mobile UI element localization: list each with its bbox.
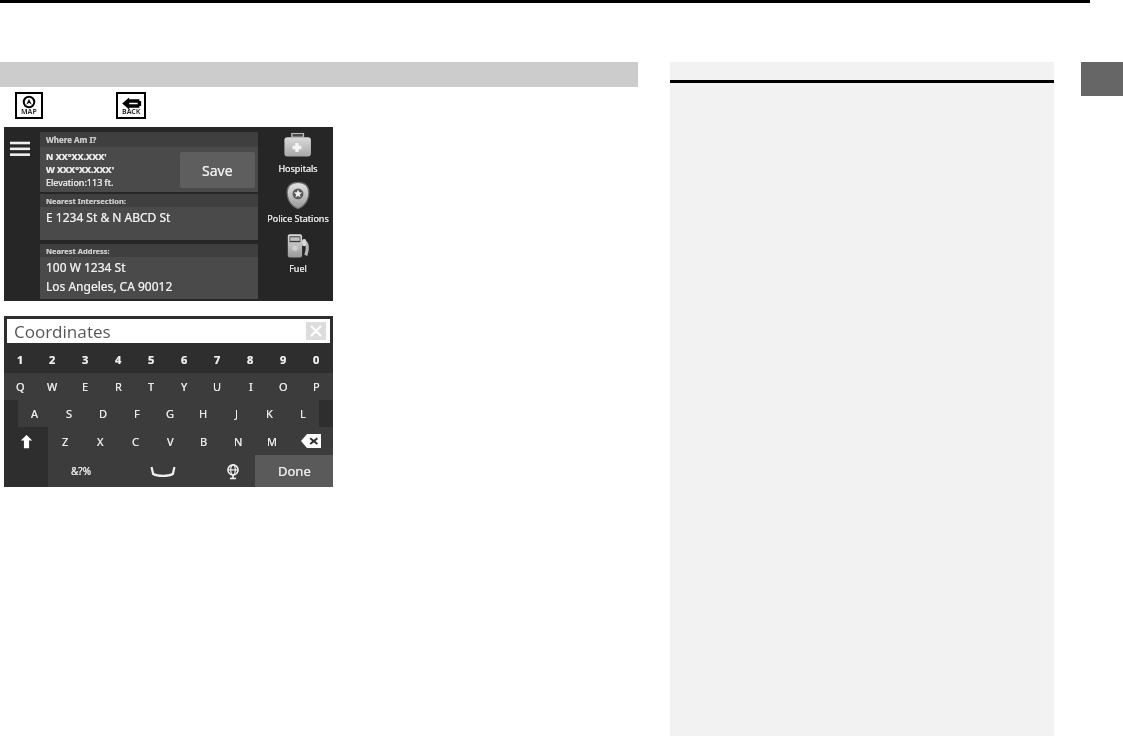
- button[interactable]: J: [220, 400, 253, 427]
- button[interactable]: E 1234 St & N ABCD St: [40, 207, 258, 240]
- staticText: &?%: [71, 464, 91, 478]
- button[interactable]: C: [118, 427, 153, 455]
- button[interactable]: Where Am I?: [40, 132, 258, 147]
- staticText: T: [148, 379, 155, 394]
- staticText: H: [199, 406, 208, 421]
- button[interactable]: Back key: [117, 93, 145, 118]
- button[interactable]: 1: [4, 346, 36, 373]
- button[interactable]: P: [300, 373, 333, 400]
- button[interactable]: Z: [48, 427, 83, 455]
- button[interactable]: 100 W 1234 St: [40, 257, 258, 299]
- staticText: N: [234, 434, 243, 449]
- staticText: M: [267, 434, 277, 449]
- staticText: D: [99, 406, 108, 421]
- staticText: Z: [62, 434, 69, 449]
- button[interactable]: X: [83, 427, 118, 455]
- button[interactable]: B: [187, 427, 221, 455]
- button[interactable]: S: [52, 400, 86, 427]
- staticText: Save: [202, 161, 233, 180]
- button[interactable]: E: [69, 373, 102, 400]
- staticText: 8: [247, 352, 254, 367]
- button[interactable]: Menu: [4, 127, 36, 301]
- staticText: W: [47, 379, 58, 394]
- staticText: C: [132, 434, 139, 449]
- staticText: 2: [49, 352, 56, 367]
- staticText: Elevation:113 ft.: [46, 176, 114, 188]
- button[interactable]: T: [135, 373, 168, 400]
- button[interactable]: F: [120, 400, 154, 427]
- button[interactable]: Map key: [16, 93, 42, 118]
- staticText: 1: [17, 352, 24, 367]
- button[interactable]: L: [286, 400, 319, 427]
- staticText: Los Angeles, CA 90012: [46, 278, 173, 294]
- staticText: MAP: [21, 107, 37, 117]
- staticText: 100 W 1234 St: [46, 259, 126, 275]
- staticText: Nearest Address:: [46, 246, 110, 256]
- button[interactable]: 8: [234, 346, 267, 373]
- button[interactable]: Save: [180, 152, 255, 188]
- staticText: Hospitals: [278, 162, 318, 174]
- button[interactable]: A: [18, 400, 52, 427]
- button[interactable]: W: [36, 373, 69, 400]
- button[interactable]: R: [102, 373, 135, 400]
- button[interactable]: 6: [168, 346, 201, 373]
- button[interactable]: M: [255, 427, 289, 455]
- staticText: Nearest Intersection:: [46, 196, 126, 206]
- button[interactable]: N: [221, 427, 255, 455]
- button[interactable]: H: [187, 400, 220, 427]
- button[interactable]: Done: [255, 455, 333, 487]
- button[interactable]: Hospitals: [262, 129, 333, 179]
- button[interactable]: Y: [168, 373, 201, 400]
- staticText: 0: [313, 352, 320, 367]
- button[interactable]: 0: [300, 346, 333, 373]
- button[interactable]: Coordinates: [7, 319, 330, 343]
- staticText: Police Stations: [267, 212, 329, 224]
- button[interactable]: Shift: [4, 427, 48, 455]
- staticText: 9: [280, 352, 287, 367]
- button[interactable]: 9: [267, 346, 300, 373]
- button[interactable]: V: [153, 427, 187, 455]
- staticText: B: [200, 434, 208, 449]
- staticText: S: [66, 406, 73, 421]
- button[interactable]: 5: [135, 346, 168, 373]
- staticText: O: [279, 379, 288, 394]
- button[interactable]: D: [86, 400, 120, 427]
- button[interactable]: I: [234, 373, 267, 400]
- staticText: E: [82, 379, 89, 394]
- staticText: P: [313, 379, 320, 394]
- button[interactable]: Space: [114, 455, 211, 487]
- staticText: E 1234 St & N ABCD St: [46, 209, 171, 225]
- staticText: X: [97, 434, 104, 449]
- button[interactable]: 4: [102, 346, 135, 373]
- button[interactable]: &?%: [48, 455, 114, 487]
- staticText: A: [31, 406, 39, 421]
- button[interactable]: Q: [4, 373, 36, 400]
- staticText: Q: [16, 379, 25, 394]
- staticText: Y: [181, 379, 188, 394]
- staticText: 7: [214, 352, 221, 367]
- button[interactable]: O: [267, 373, 300, 400]
- button[interactable]: 2: [36, 346, 69, 373]
- staticText: F: [134, 406, 140, 421]
- staticText: K: [266, 406, 273, 421]
- button[interactable]: 7: [201, 346, 234, 373]
- staticText: V: [167, 434, 174, 449]
- button[interactable]: U: [201, 373, 234, 400]
- staticText: 6: [181, 352, 188, 367]
- staticText: Coordinates: [14, 320, 111, 343]
- button[interactable]: K: [253, 400, 286, 427]
- staticText: Fuel: [289, 262, 307, 274]
- staticText: Where Am I?: [46, 134, 97, 145]
- staticText: 4: [115, 352, 122, 367]
- staticText: Done: [278, 462, 311, 480]
- staticText: N XX°XX.XXX': [46, 150, 107, 162]
- button[interactable]: Backspace: [289, 427, 333, 455]
- staticText: 5: [148, 352, 155, 367]
- button[interactable]: Fuel: [262, 229, 333, 279]
- button[interactable]: 3: [69, 346, 102, 373]
- button[interactable]: Police Stations: [262, 179, 333, 229]
- button[interactable]: G: [154, 400, 187, 427]
- button[interactable]: Language: [211, 455, 255, 487]
- button[interactable]: Clear text: [306, 322, 326, 340]
